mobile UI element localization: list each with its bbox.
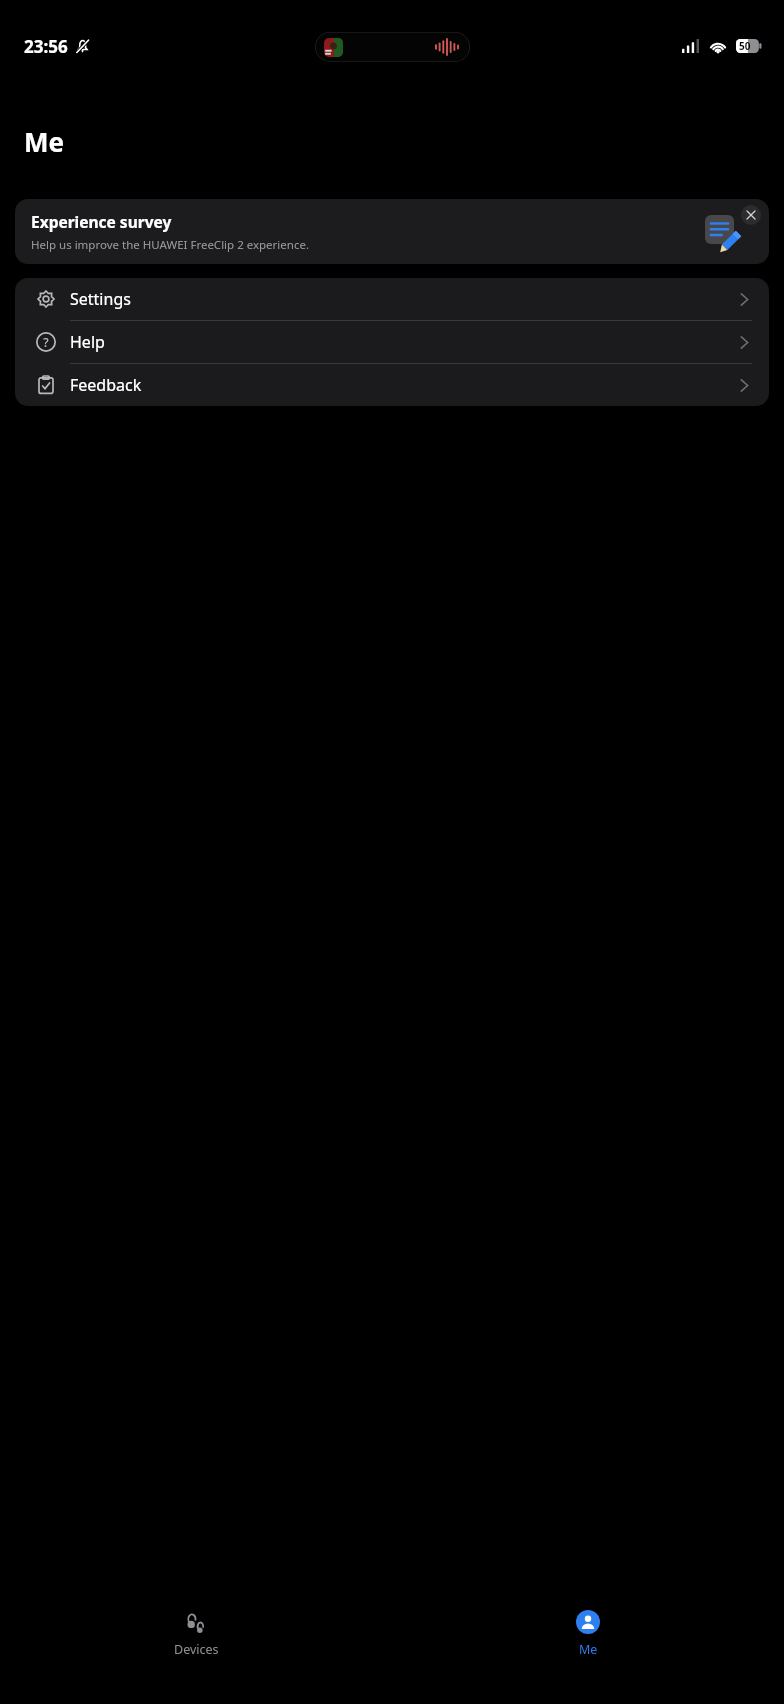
button[interactable]: Feedback: [15, 364, 769, 406]
button[interactable]: Now playing: [315, 32, 470, 62]
button[interactable]: Settings: [15, 278, 769, 320]
staticText: Help: [70, 331, 105, 353]
staticText: 50: [739, 39, 751, 53]
staticText: 23:56: [24, 35, 68, 58]
button[interactable]: Me: [392, 1594, 784, 1704]
button[interactable]: Devices: [0, 1594, 392, 1704]
button[interactable]: Close: [741, 205, 761, 225]
staticText: Experience survey: [31, 211, 172, 232]
staticText: Devices: [174, 1641, 219, 1658]
button[interactable]: Experience survey: [15, 199, 769, 264]
staticText: Me: [24, 124, 65, 159]
staticText: ?: [43, 334, 49, 350]
staticText: Me: [579, 1641, 598, 1658]
button[interactable]: ?: [15, 321, 769, 363]
staticText: Feedback: [70, 374, 142, 396]
staticText: Help us improve the HUAWEI FreeClip 2 ex…: [31, 237, 309, 253]
staticText: Settings: [70, 288, 131, 310]
